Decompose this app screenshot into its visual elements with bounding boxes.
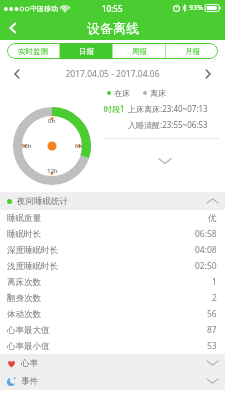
staticText: 离床次数 <box>7 277 41 288</box>
staticText: 02:50 <box>195 260 217 272</box>
staticText: 93% <box>189 3 203 13</box>
staticText: 睡眠质量 <box>7 213 41 224</box>
staticText: 事件 <box>21 376 38 387</box>
button[interactable]: 浅度睡眠时长 <box>0 258 225 274</box>
staticText: 周报 <box>132 47 147 56</box>
button[interactable]: 离床次数 <box>0 274 225 290</box>
staticText: 浅度睡眠时长 <box>7 261 58 272</box>
staticText: 上床离床:23:40~07:13 <box>128 103 208 114</box>
staticText: 心率最小值 <box>7 341 50 352</box>
staticText: 离床 <box>150 88 166 98</box>
staticText: 12h <box>47 167 58 175</box>
staticText: 时段1 <box>104 103 125 114</box>
button[interactable]: 实时监测 <box>7 43 59 59</box>
staticText: 体动次数 <box>7 309 41 320</box>
button[interactable]: 月报 <box>166 43 218 59</box>
staticText: 06:58 <box>195 228 217 240</box>
button[interactable]: 睡眠质量 <box>0 210 225 226</box>
button[interactable]: 日报 <box>60 43 112 59</box>
button[interactable]: Next <box>199 65 217 83</box>
staticText: 心率 <box>21 358 38 369</box>
button[interactable]: Expand <box>104 153 225 169</box>
staticText: 04:08 <box>195 244 217 256</box>
button[interactable]: 翻身次数 <box>0 290 225 306</box>
staticText: 心率最大值 <box>7 325 50 336</box>
staticText: 优 <box>208 213 217 224</box>
button[interactable]: 心率最大值 <box>0 322 225 338</box>
staticText: 月报 <box>185 47 200 56</box>
button[interactable]: 睡眠时长 <box>0 226 225 242</box>
staticText: 睡眠时长 <box>7 229 41 240</box>
button[interactable]: 事件 <box>0 372 225 390</box>
staticText: 翻身次数 <box>7 293 41 304</box>
staticText: 0h <box>48 117 56 125</box>
button[interactable]: Back <box>0 16 26 40</box>
button[interactable]: 深度睡眠时长 <box>0 242 225 258</box>
button[interactable]: 周报 <box>113 43 165 59</box>
button[interactable]: 心率最小值 <box>0 338 225 354</box>
staticText: 实时监测 <box>18 47 48 56</box>
staticText: 在床 <box>114 88 130 98</box>
staticText: 中国移动 <box>30 4 58 13</box>
staticText: 夜间睡眠统计 <box>17 196 68 207</box>
staticText: 设备离线 <box>87 20 139 36</box>
staticText: 日报 <box>79 47 94 56</box>
staticText: 深度睡眠时长 <box>7 245 58 256</box>
button[interactable]: Previous <box>8 65 26 83</box>
staticText: 87 <box>207 324 217 336</box>
staticText: 2017.04.05 - 2017.04.06 <box>26 68 199 80</box>
button[interactable]: 夜间睡眠统计 <box>0 192 225 210</box>
staticText: 6h <box>75 142 83 150</box>
staticText: 18h <box>21 142 32 150</box>
staticText: 53 <box>207 340 217 352</box>
staticText: 1 <box>212 276 217 288</box>
staticText: 56 <box>207 308 217 320</box>
staticText: 2 <box>212 292 217 304</box>
button[interactable]: 心率 <box>0 354 225 372</box>
staticText: 10:55 <box>102 3 123 14</box>
button[interactable]: 体动次数 <box>0 306 225 322</box>
staticText: 入睡清醒:23:55~06:53 <box>128 119 208 130</box>
